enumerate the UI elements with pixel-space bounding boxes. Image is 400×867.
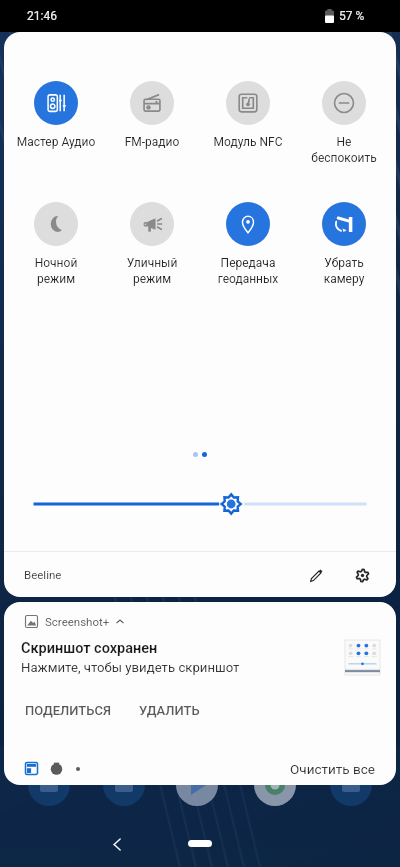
button[interactable]: FM-радио [104, 81, 200, 149]
button[interactable]: Модуль NFC [200, 81, 296, 149]
staticText: Нажмите, чтобы увидеть скриншот [21, 660, 240, 675]
button[interactable]: Ночной режим [8, 202, 104, 286]
button[interactable]: Не беспокоить [296, 81, 392, 165]
staticText: Ночной режим [8, 256, 104, 286]
button[interactable]: Передача геоданных [200, 202, 296, 286]
button[interactable]: Главный экран [188, 840, 212, 847]
staticText: Передача геоданных [200, 256, 296, 286]
staticText: 57 % [339, 9, 365, 23]
button[interactable]: Назад [102, 830, 130, 858]
staticText: Не беспокоить [296, 135, 392, 165]
staticText: УДАЛИТЬ [139, 703, 200, 718]
button[interactable]: Уличный режим [104, 202, 200, 286]
staticText: Beeline [24, 568, 62, 581]
button[interactable]: Мастер Аудио [8, 81, 104, 149]
staticText: Убрать камеру [296, 256, 392, 286]
button[interactable]: Изменить [298, 557, 334, 593]
button[interactable]: УДАЛИТЬ [131, 697, 208, 724]
staticText: 21:46 [27, 9, 57, 23]
staticText: Мастер Аудио [8, 135, 104, 149]
staticText: FM-радио [104, 135, 200, 149]
staticText: Уличный режим [104, 256, 200, 286]
button[interactable]: ПОДЕЛИТЬСЯ [17, 697, 119, 724]
button[interactable]: Убрать камеру [296, 202, 392, 286]
staticText: Модуль NFC [200, 135, 296, 149]
staticText: Очистить все [290, 761, 375, 777]
staticText: Screenshot+ [45, 615, 110, 628]
button[interactable]: Настройки [344, 557, 380, 593]
staticText: Скриншот сохранен [21, 640, 158, 657]
staticText: ПОДЕЛИТЬСЯ [25, 703, 111, 718]
button[interactable]: Очистить все [290, 761, 375, 777]
